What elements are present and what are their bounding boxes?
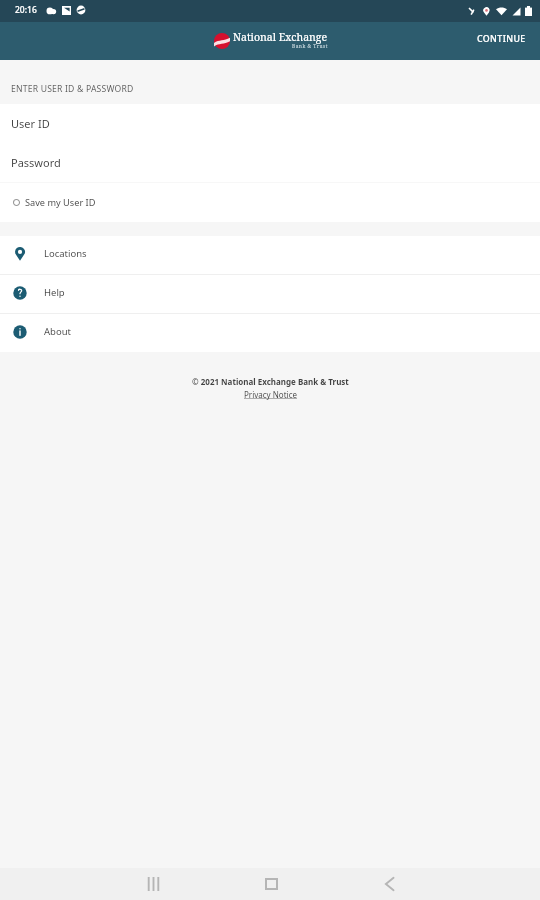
staticText: User ID [11,116,50,131]
button[interactable]: Home [249,868,293,900]
button[interactable]: Locations [0,236,540,274]
button[interactable]: Recents [131,868,175,900]
staticText: © 2021 National Exchange Bank & Trust [192,376,349,387]
button[interactable]: User ID [0,104,540,143]
staticText: Help [44,286,65,299]
button[interactable]: Save my User ID [0,183,540,222]
staticText: National Exchange [233,30,328,44]
button[interactable]: Password [0,143,540,182]
staticText: Save my User ID [25,196,96,209]
staticText: Password [11,155,61,170]
staticText: 20:16 [15,4,37,16]
button[interactable]: Privacy Notice [244,389,297,400]
staticText: Locations [44,247,87,260]
button[interactable]: Help [0,275,540,313]
staticText: About [44,325,71,338]
button[interactable]: Back [367,868,411,900]
staticText: CONTINUE [477,33,526,45]
staticText: Privacy Notice [244,389,297,400]
button[interactable]: About [0,314,540,352]
staticText: Bank & Trust [292,43,328,50]
button[interactable]: CONTINUE [463,24,540,54]
staticText: ENTER USER ID & PASSWORD [11,83,134,95]
